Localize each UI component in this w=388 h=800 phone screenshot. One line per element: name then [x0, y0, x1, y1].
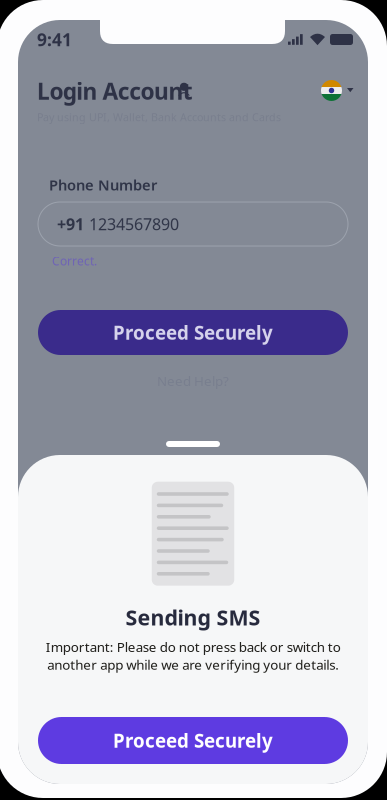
staticText: 9:41: [37, 28, 72, 51]
staticText: Proceed Securely: [113, 728, 273, 753]
staticText: 1234567890: [89, 213, 179, 235]
staticText: Correct.: [52, 253, 97, 269]
button[interactable]: Proceed Securely: [38, 717, 348, 764]
staticText: Proceed Securely: [113, 320, 273, 345]
staticText: Need Help?: [157, 372, 229, 390]
staticText: Important: Please do not press back or s…: [45, 638, 340, 673]
staticText: Sending SMS: [125, 603, 260, 631]
staticText: Phone Number: [49, 175, 157, 194]
staticText: +91: [57, 213, 84, 235]
staticText: Login Account: [37, 76, 193, 106]
